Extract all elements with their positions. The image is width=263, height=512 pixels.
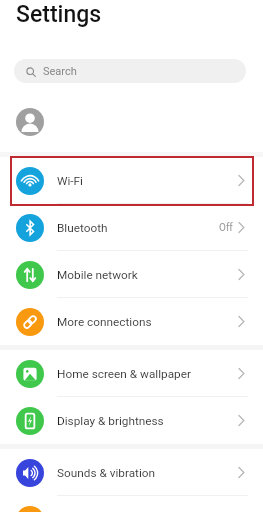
staticText: Settings (16, 1, 102, 28)
button[interactable]: Account (0, 108, 263, 136)
button[interactable]: Search (14, 59, 246, 83)
staticText: Search (43, 65, 77, 78)
button[interactable]: Bluetooth (0, 204, 263, 251)
button[interactable]: More connections (0, 298, 263, 345)
staticText: Sounds & vibration (57, 466, 156, 480)
button[interactable]: Notifications (0, 496, 263, 512)
staticText: Display & brightness (57, 414, 164, 428)
staticText: Bluetooth (57, 221, 108, 235)
button[interactable]: Wi-Fi (0, 157, 263, 204)
staticText: Home screen & wallpaper (57, 367, 191, 381)
button[interactable]: Sounds & vibration (0, 449, 263, 496)
staticText: Mobile network (57, 268, 138, 282)
button[interactable]: Mobile network (0, 251, 263, 298)
staticText: Off (219, 222, 233, 234)
button[interactable]: Home screen & wallpaper (0, 350, 263, 397)
button[interactable]: Display & brightness (0, 397, 263, 444)
staticText: Wi-Fi (57, 174, 83, 188)
staticText: More connections (57, 315, 152, 329)
